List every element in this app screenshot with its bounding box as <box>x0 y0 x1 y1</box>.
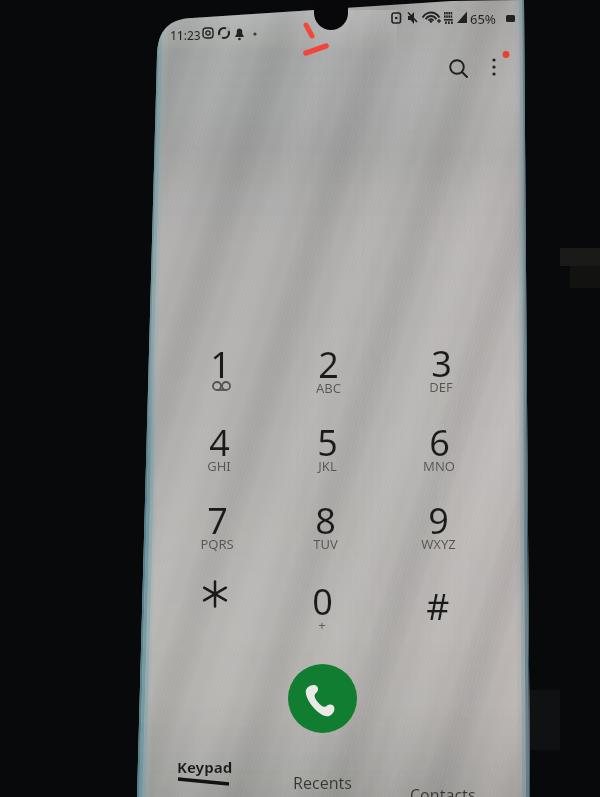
button[interactable]: Star <box>169 564 261 626</box>
button[interactable]: Keypad <box>166 752 244 790</box>
staticText: 9 <box>428 496 449 545</box>
staticText: 6 <box>429 418 450 467</box>
staticText: # <box>426 582 450 631</box>
button[interactable]: 1 <box>174 331 266 403</box>
staticText: 1 <box>210 340 231 389</box>
staticText: GHI <box>207 457 231 475</box>
button[interactable]: 4 <box>173 409 265 481</box>
staticText: PQRS <box>200 535 234 553</box>
staticText: ABC <box>316 379 341 397</box>
staticText: DEF <box>429 378 453 396</box>
staticText: 3 <box>431 339 452 388</box>
button[interactable]: 2 <box>282 331 374 403</box>
staticText: 11:23 <box>170 27 201 43</box>
button[interactable]: More options <box>484 46 514 76</box>
staticText: 8 <box>315 496 336 545</box>
staticText: Contacts <box>410 784 476 797</box>
staticText: 0 <box>312 577 333 626</box>
button[interactable]: Recents <box>285 768 361 797</box>
button[interactable]: 5 <box>281 409 373 481</box>
button[interactable]: 9 <box>392 487 484 559</box>
staticText: 4 <box>209 418 230 467</box>
staticText: Recents <box>293 772 353 794</box>
staticText: 65% <box>470 10 496 28</box>
staticText: 2 <box>318 340 339 389</box>
button[interactable]: 6 <box>393 409 485 481</box>
button[interactable]: Call <box>288 664 357 733</box>
staticText: 7 <box>207 496 228 545</box>
button[interactable]: 7 <box>171 487 263 559</box>
button[interactable]: Contacts <box>404 781 482 797</box>
button[interactable]: # <box>392 573 484 645</box>
button[interactable]: 8 <box>279 487 371 559</box>
button[interactable]: 3 <box>395 330 487 402</box>
staticText: 5 <box>317 418 338 467</box>
staticText: JKL <box>318 457 337 475</box>
staticText: + <box>318 616 326 634</box>
staticText: Keypad <box>177 757 233 777</box>
staticText: MNO <box>423 457 455 475</box>
staticText: TUV <box>313 535 338 553</box>
staticText: WXYZ <box>421 535 456 553</box>
button[interactable]: 0 <box>276 568 368 640</box>
button[interactable]: Search <box>437 48 477 88</box>
